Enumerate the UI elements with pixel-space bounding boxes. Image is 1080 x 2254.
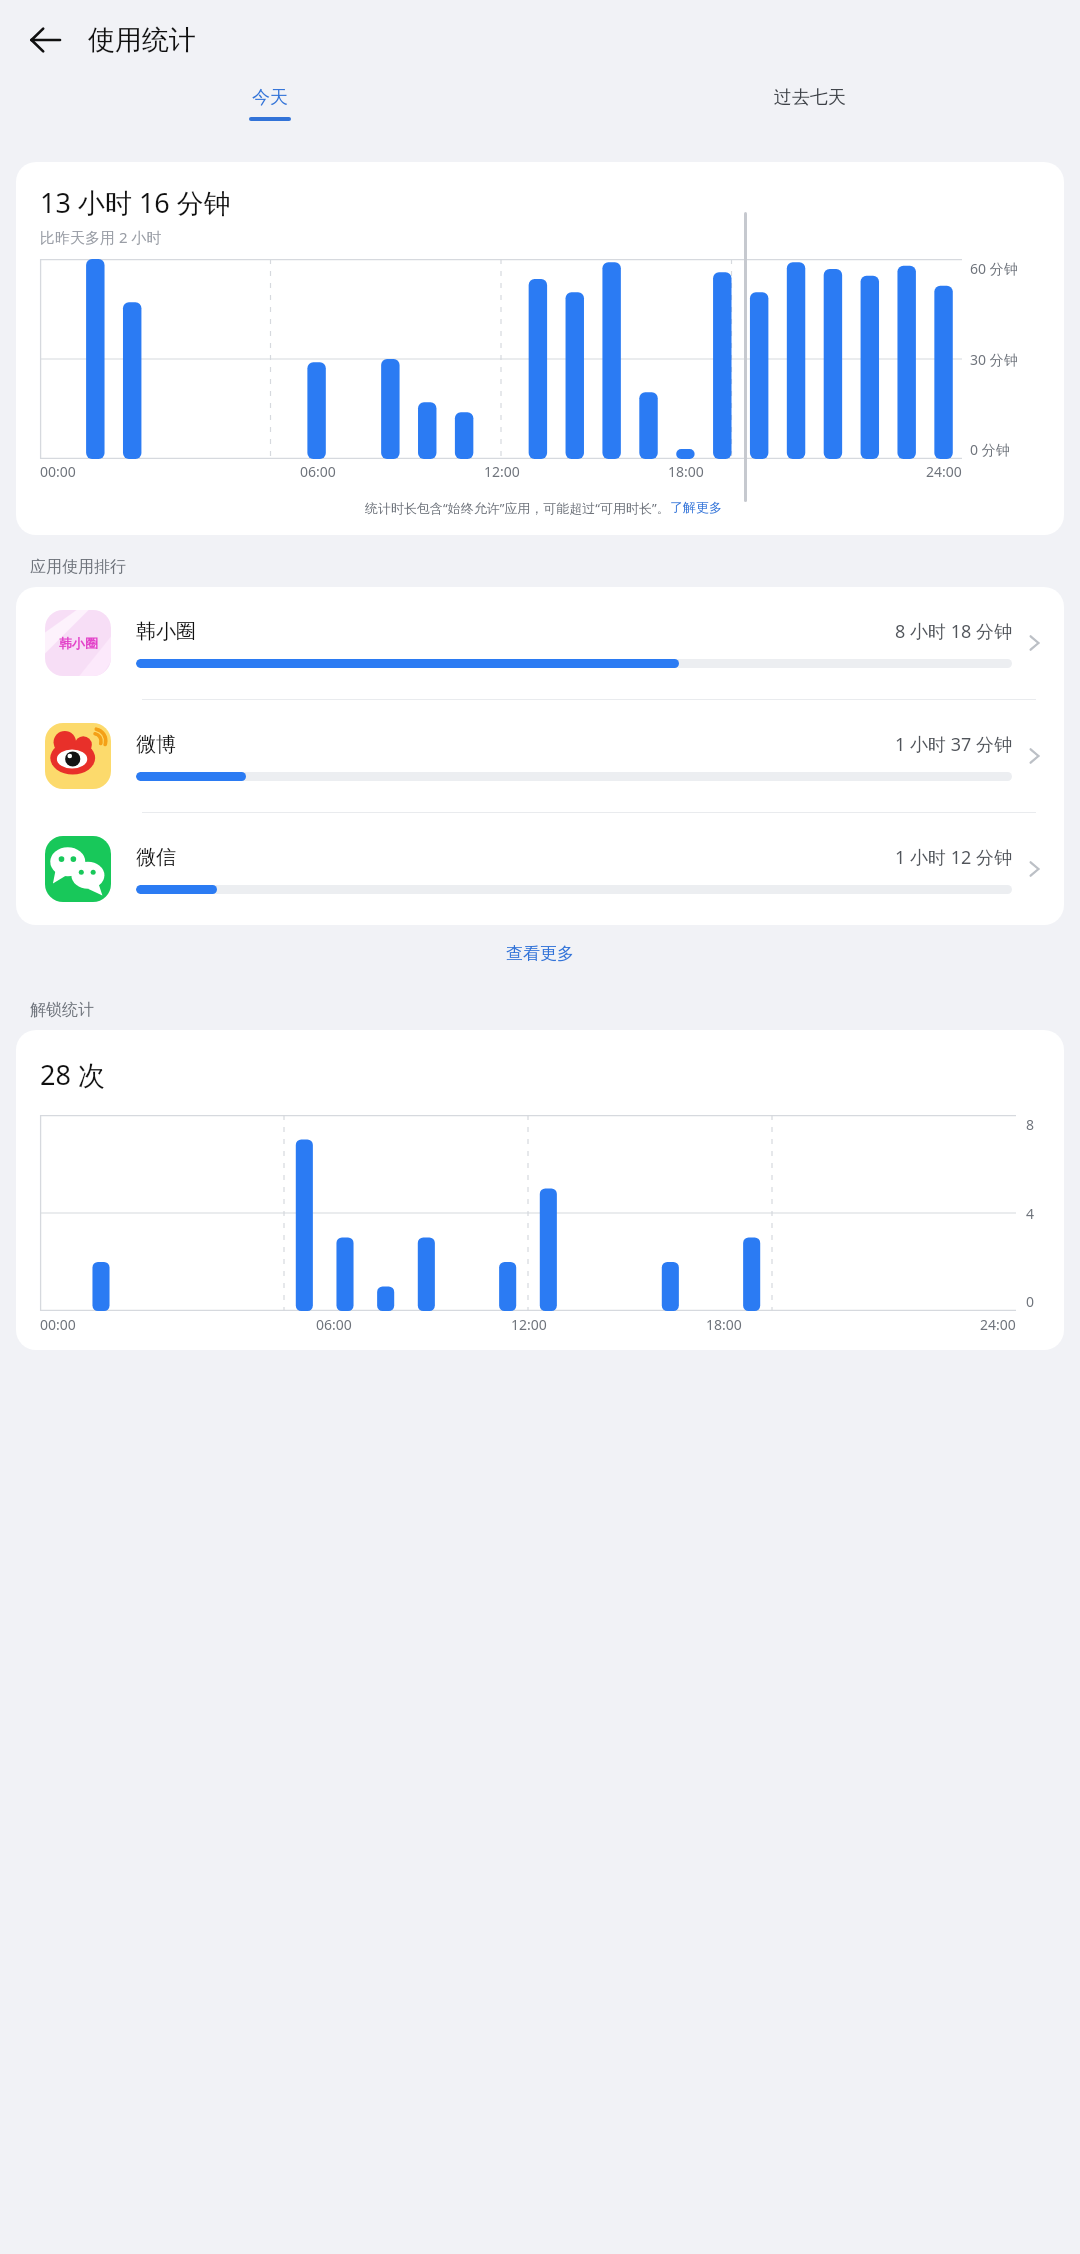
staticText: 1 小时 37 分钟 <box>895 732 1012 757</box>
staticText: 了解更多 <box>670 499 722 515</box>
staticText: 韩小圈 <box>136 619 196 644</box>
staticText: 06:00 <box>300 462 336 481</box>
button[interactable]: 过去七天 <box>748 80 872 115</box>
button[interactable]: 了解更多 <box>670 499 722 515</box>
staticText: 00:00 <box>40 462 76 481</box>
staticText: 1 小时 12 分钟 <box>895 845 1012 870</box>
staticText: 使用统计 <box>88 23 196 57</box>
staticText: 8 <box>1026 1115 1035 1134</box>
staticText: 18:00 <box>706 1315 742 1334</box>
staticText: 查看更多 <box>506 943 574 964</box>
staticText: 60 分钟 <box>970 259 1018 278</box>
staticText: 微信 <box>136 845 176 870</box>
staticText: 韩小圈 <box>59 635 98 651</box>
staticText: 解锁统计 <box>30 1000 94 1020</box>
staticText: 今天 <box>252 86 288 109</box>
button[interactable]: 微博 <box>16 700 1064 812</box>
staticText: 0 <box>1026 1292 1035 1311</box>
button[interactable]: 查看更多 <box>0 925 1080 982</box>
button[interactable]: 韩小圈 <box>16 587 1064 699</box>
button[interactable]: Back <box>16 11 74 69</box>
staticText: 24:00 <box>980 1315 1016 1334</box>
staticText: 应用使用排行 <box>30 557 126 577</box>
button[interactable]: 今天 <box>223 80 317 127</box>
staticText: 比昨天多用 2 小时 <box>40 227 162 247</box>
staticText: 微博 <box>136 732 176 757</box>
staticText: 28 次 <box>40 1056 105 1093</box>
staticText: 30 分钟 <box>970 350 1018 369</box>
staticText: 0 分钟 <box>970 440 1010 459</box>
staticText: 18:00 <box>668 462 704 481</box>
staticText: 8 小时 18 分钟 <box>895 619 1012 644</box>
staticText: 13 小时 16 分钟 <box>40 184 231 221</box>
staticText: 4 <box>1026 1204 1035 1223</box>
staticText: 过去七天 <box>774 86 846 109</box>
staticText: 24:00 <box>926 462 962 481</box>
staticText: 06:00 <box>316 1315 352 1334</box>
staticText: 12:00 <box>484 462 520 481</box>
staticText: 统计时长包含“始终允许”应用，可能超过“可用时长”。 <box>365 499 670 517</box>
button[interactable]: 微信 <box>16 813 1064 925</box>
staticText: 12:00 <box>511 1315 547 1334</box>
staticText: 00:00 <box>40 1315 76 1334</box>
